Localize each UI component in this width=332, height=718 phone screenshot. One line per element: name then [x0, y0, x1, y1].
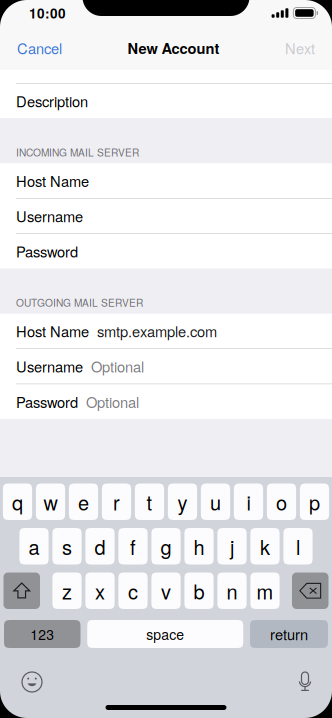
button[interactable]: Emoji keyboard [0, 672, 42, 692]
staticText: o [276, 487, 287, 516]
staticText: d [94, 532, 105, 560]
button[interactable]: r [102, 483, 131, 520]
button[interactable]: Username [0, 199, 332, 233]
button[interactable]: w [36, 483, 65, 520]
staticText: i [246, 487, 250, 516]
staticText: smtp.example.com [97, 320, 217, 341]
button[interactable]: u [201, 483, 230, 520]
staticText: z [62, 576, 72, 605]
staticText: Password [16, 391, 78, 412]
button[interactable]: e [69, 483, 98, 520]
staticText: e [78, 487, 89, 516]
button[interactable]: a [19, 528, 49, 564]
staticText: New Account [127, 37, 219, 58]
staticText: w [43, 487, 57, 516]
staticText: OUTGOING MAIL SERVER [16, 295, 143, 310]
staticText: space [146, 624, 184, 644]
button[interactable]: Delete [292, 572, 328, 609]
staticText: Username [16, 205, 83, 226]
button[interactable]: k [250, 528, 280, 564]
button[interactable]: space [87, 620, 243, 648]
button[interactable]: o [267, 483, 296, 520]
staticText: l [296, 532, 300, 560]
staticText: k [260, 532, 270, 560]
button[interactable]: return [250, 620, 328, 648]
staticText: Password [16, 241, 78, 262]
staticText: h [193, 532, 204, 560]
staticText: c [128, 576, 138, 605]
staticText: v [161, 576, 171, 605]
button[interactable]: Username [0, 349, 332, 384]
staticText: j [230, 532, 234, 560]
staticText: m [256, 576, 273, 605]
button[interactable]: q [3, 483, 32, 520]
staticText: n [226, 576, 237, 605]
staticText: b [193, 576, 204, 605]
staticText: u [210, 487, 221, 516]
staticText: Description [16, 90, 88, 111]
staticText: Username [16, 356, 83, 377]
button[interactable]: x [85, 572, 115, 609]
staticText: g [160, 532, 171, 560]
staticText: p [309, 487, 320, 516]
button[interactable]: Cancel [0, 29, 62, 67]
button[interactable]: b [184, 572, 214, 609]
button[interactable]: j [217, 528, 247, 564]
button[interactable]: n [217, 572, 247, 609]
button[interactable]: Password [0, 384, 332, 419]
button[interactable]: v [151, 572, 181, 609]
button[interactable]: Description [0, 84, 332, 118]
button[interactable]: Host Name [0, 163, 332, 198]
button[interactable]: Password [0, 234, 332, 269]
staticText: Optional [91, 356, 144, 377]
button[interactable]: Shift [3, 572, 40, 609]
staticText: Host Name [16, 170, 89, 191]
staticText: a [28, 532, 39, 560]
staticText: Cancel [17, 37, 62, 58]
button[interactable]: Next [285, 29, 332, 67]
staticText: Optional [86, 391, 139, 412]
button[interactable]: g [151, 528, 181, 564]
button[interactable]: l [283, 528, 313, 564]
staticText: Email [16, 52, 52, 73]
button[interactable]: h [184, 528, 214, 564]
button[interactable]: s [52, 528, 82, 564]
button[interactable]: y [168, 483, 197, 520]
button[interactable]: Host Name [0, 314, 332, 348]
staticText: Host Name [16, 320, 89, 341]
staticText: Next [285, 37, 315, 58]
button[interactable]: c [118, 572, 148, 609]
staticText: y [177, 487, 187, 516]
button[interactable]: f [118, 528, 148, 564]
button[interactable]: t [135, 483, 164, 520]
staticText: f [130, 532, 136, 560]
button[interactable]: m [250, 572, 280, 609]
button[interactable]: 123 [4, 620, 80, 648]
staticText: s [62, 532, 72, 560]
staticText: x [95, 576, 105, 605]
button[interactable]: i [234, 483, 263, 520]
button[interactable]: z [52, 572, 82, 609]
staticText: t [146, 487, 152, 516]
button[interactable]: p [300, 483, 329, 520]
staticText: INCOMING MAIL SERVER [16, 145, 139, 159]
staticText: 123 [30, 624, 54, 644]
staticText: r [113, 487, 120, 516]
button[interactable]: Dictation [298, 671, 332, 692]
button[interactable]: d [85, 528, 115, 564]
staticText: return [270, 623, 308, 644]
staticText: 10:00 [29, 3, 66, 23]
staticText: q [12, 487, 23, 516]
